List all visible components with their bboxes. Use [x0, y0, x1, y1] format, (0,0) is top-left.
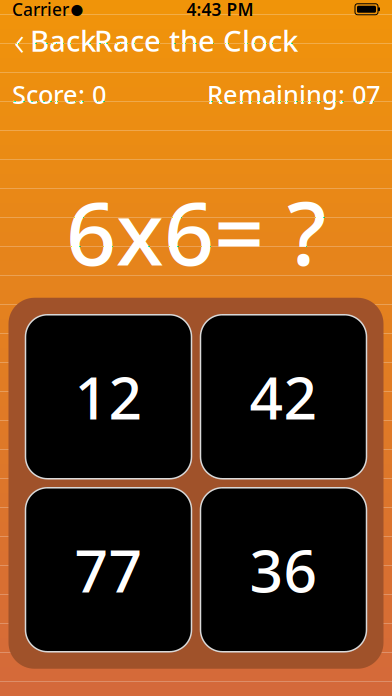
button[interactable]: 77 [25, 488, 191, 652]
staticText: 6x6= ? [66, 173, 326, 290]
staticText: Score: 0 [12, 77, 106, 111]
staticText: 4:43 PM [186, 0, 253, 21]
staticText: Remaining: 07 [207, 77, 380, 111]
staticText: 42 [249, 358, 317, 436]
staticText: Back [30, 21, 96, 60]
staticText: 36 [249, 531, 317, 609]
staticText: Race the Clock [94, 21, 298, 60]
staticText: 12 [74, 358, 142, 436]
staticText: ● [70, 1, 83, 17]
button[interactable]: 36 [200, 488, 366, 652]
staticText: Carrier [12, 0, 69, 21]
staticText: 77 [74, 531, 142, 609]
button[interactable]: 42 [200, 315, 366, 479]
button[interactable]: 12 [25, 315, 191, 479]
button[interactable]: ‹ [6, 12, 104, 69]
staticText: ‹ [14, 14, 25, 67]
